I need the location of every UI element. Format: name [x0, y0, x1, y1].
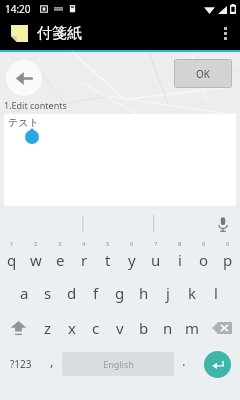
- staticText: m: [185, 318, 200, 338]
- staticText: テスト: [8, 116, 39, 129]
- button[interactable]: a: [12, 275, 36, 310]
- button[interactable]: k: [180, 275, 204, 310]
- button[interactable]: ?123: [0, 345, 42, 383]
- staticText: x: [68, 318, 76, 338]
- button[interactable]: .: [174, 345, 194, 383]
- staticText: v: [116, 318, 124, 338]
- button[interactable]: n: [156, 310, 180, 345]
- button[interactable]: 6: [120, 238, 144, 275]
- button[interactable]: b: [132, 310, 156, 345]
- button[interactable]: Voice input: [213, 214, 233, 234]
- staticText: 7: [154, 240, 158, 248]
- button[interactable]: Back: [6, 60, 42, 96]
- staticText: 3: [58, 240, 62, 248]
- staticText: k: [188, 283, 197, 303]
- staticText: y: [128, 250, 136, 270]
- staticText: d: [67, 283, 77, 303]
- button[interactable]: m: [180, 310, 204, 345]
- button[interactable]: j: [156, 275, 180, 310]
- staticText: g: [115, 283, 125, 303]
- staticText: 1: [10, 240, 14, 248]
- button[interactable]: 8: [168, 238, 192, 275]
- button[interactable]: z: [36, 310, 60, 345]
- button[interactable]: 3: [48, 238, 72, 275]
- button[interactable]: OK: [174, 59, 232, 88]
- button[interactable]: l: [204, 275, 228, 310]
- staticText: h: [139, 283, 149, 303]
- button[interactable]: Voice input: [0, 210, 240, 238]
- staticText: 付箋紙: [37, 24, 82, 43]
- staticText: 14:20: [5, 2, 31, 16]
- staticText: English: [103, 358, 134, 370]
- button[interactable]: x: [60, 310, 84, 345]
- staticText: f: [93, 283, 99, 303]
- staticText: 6: [130, 240, 134, 248]
- button[interactable]: テスト: [4, 114, 236, 206]
- button[interactable]: h: [132, 275, 156, 310]
- button[interactable]: 5: [96, 238, 120, 275]
- button[interactable]: d: [60, 275, 84, 310]
- button[interactable]: English: [62, 352, 174, 376]
- staticText: .: [182, 352, 186, 370]
- button[interactable]: s: [36, 275, 60, 310]
- staticText: p: [223, 250, 233, 270]
- button[interactable]: Shift: [0, 310, 36, 345]
- button[interactable]: 7: [144, 238, 168, 275]
- button[interactable]: More options: [214, 17, 236, 50]
- staticText: 0: [226, 240, 230, 248]
- staticText: OK: [196, 67, 210, 81]
- staticText: j: [166, 283, 170, 303]
- staticText: q: [7, 250, 17, 270]
- button[interactable]: 1: [0, 238, 24, 275]
- staticText: w: [30, 250, 42, 270]
- button[interactable]: v: [108, 310, 132, 345]
- button[interactable]: Backspace: [204, 310, 240, 345]
- staticText: r: [81, 250, 88, 270]
- staticText: 4: [82, 240, 86, 248]
- staticText: c: [92, 318, 100, 338]
- staticText: u: [151, 250, 161, 270]
- staticText: 8: [178, 240, 182, 248]
- staticText: b: [139, 318, 149, 338]
- staticText: o: [199, 250, 209, 270]
- button[interactable]: c: [84, 310, 108, 345]
- button[interactable]: g: [108, 275, 132, 310]
- staticText: t: [105, 250, 111, 270]
- staticText: n: [163, 318, 173, 338]
- staticText: l: [214, 283, 218, 303]
- staticText: 2: [34, 240, 38, 248]
- staticText: ?123: [10, 357, 32, 371]
- staticText: i: [178, 250, 182, 270]
- button[interactable]: Enter: [194, 345, 240, 383]
- staticText: s: [44, 283, 52, 303]
- button[interactable]: 9: [192, 238, 216, 275]
- button[interactable]: 4: [72, 238, 96, 275]
- button[interactable]: ,: [42, 345, 62, 383]
- staticText: 5: [106, 240, 110, 248]
- button[interactable]: 0: [216, 238, 240, 275]
- staticText: 9: [202, 240, 206, 248]
- staticText: 1.Edit contents: [4, 99, 67, 111]
- button[interactable]: 2: [24, 238, 48, 275]
- staticText: a: [20, 283, 29, 303]
- staticText: ,: [50, 352, 54, 370]
- staticText: e: [56, 250, 65, 270]
- button[interactable]: f: [84, 275, 108, 310]
- staticText: z: [44, 318, 52, 338]
